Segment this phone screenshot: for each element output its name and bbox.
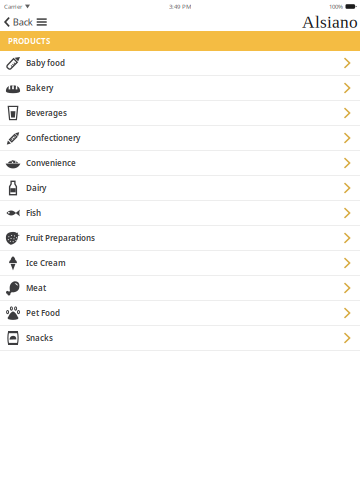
button[interactable]: Fish — [0, 201, 360, 226]
button[interactable]: Back — [0, 13, 33, 31]
staticText: Meat — [26, 283, 46, 293]
button[interactable]: Ice Cream — [0, 251, 360, 276]
staticText: Carrier — [4, 2, 22, 11]
button[interactable]: Bakery — [0, 76, 360, 101]
button[interactable]: Baby food — [0, 51, 360, 76]
staticText: Alsiano — [302, 12, 358, 32]
staticText: PRODUCTS — [8, 36, 50, 46]
button[interactable]: Convenience — [0, 151, 360, 176]
staticText: Bakery — [26, 83, 53, 93]
button[interactable]: Menu — [33, 14, 49, 30]
staticText: Fish — [26, 208, 41, 218]
staticText: Confectionery — [26, 133, 80, 143]
button[interactable]: Confectionery — [0, 126, 360, 151]
button[interactable]: Beverages — [0, 101, 360, 126]
staticText: 100% — [329, 2, 343, 11]
button[interactable]: Fruit Preparations — [0, 226, 360, 251]
staticText: Snacks — [26, 333, 53, 343]
staticText: Baby food — [26, 58, 65, 68]
button[interactable]: Dairy — [0, 176, 360, 201]
staticText: Fruit Preparations — [26, 233, 95, 243]
staticText: 3:49 PM — [169, 2, 191, 11]
staticText: Beverages — [26, 108, 67, 118]
staticText: Ice Cream — [26, 258, 66, 268]
button[interactable]: Pet Food — [0, 301, 360, 326]
staticText: Dairy — [26, 183, 46, 193]
staticText: Pet Food — [26, 308, 60, 318]
staticText: Convenience — [26, 158, 76, 168]
staticText: Back — [13, 16, 33, 28]
button[interactable]: Meat — [0, 276, 360, 301]
button[interactable]: Snacks — [0, 326, 360, 351]
